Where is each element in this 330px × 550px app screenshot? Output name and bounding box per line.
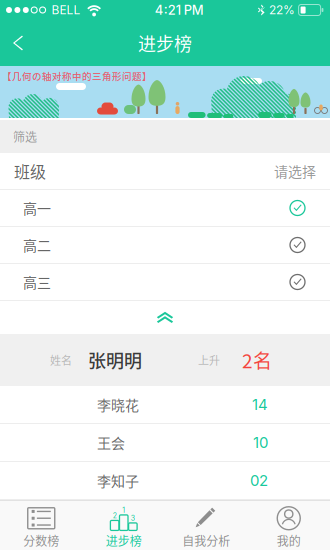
button[interactable]: Back <box>0 23 42 63</box>
button[interactable]: 高三 <box>0 264 330 301</box>
button[interactable]: 王会 <box>0 424 330 462</box>
staticText: BELL <box>52 3 81 17</box>
staticText: 筛选 <box>13 128 37 145</box>
staticText: 进步榜 <box>106 532 142 549</box>
staticText: 请选择 <box>274 161 316 181</box>
staticText: 14 <box>252 395 268 413</box>
staticText: 高一 <box>23 198 51 218</box>
staticText: 王会 <box>97 432 125 453</box>
button[interactable]: 自我分析 <box>165 501 247 550</box>
staticText: 高二 <box>23 235 51 255</box>
button[interactable]: 班级 <box>0 153 330 189</box>
button[interactable]: 分数榜 <box>0 501 82 550</box>
staticText: 22% <box>269 3 295 17</box>
staticText: 张明明 <box>88 347 142 373</box>
staticText: 【几何の轴对称中的三角形问题】 <box>2 69 152 83</box>
staticText: 高三 <box>23 272 51 292</box>
button[interactable]: 高二 <box>0 227 330 264</box>
staticText: 我的 <box>277 532 301 549</box>
staticText: 分数榜 <box>23 532 59 549</box>
button[interactable]: 李知子 <box>0 462 330 500</box>
staticText: 李晓花 <box>97 394 139 415</box>
staticText: 上升 <box>198 352 220 368</box>
staticText: 2 <box>113 512 117 520</box>
button[interactable]: 高一 <box>0 190 330 227</box>
staticText: 班级 <box>14 159 46 183</box>
staticText: 姓名 <box>50 352 72 368</box>
staticText: 4:21 PM <box>155 2 204 18</box>
staticText: 李知子 <box>97 470 139 491</box>
staticText: 1 <box>122 506 125 515</box>
staticText: 自我分析 <box>182 532 230 549</box>
button[interactable]: 我的 <box>247 501 330 550</box>
button[interactable]: Collapse filters <box>0 301 330 334</box>
button[interactable]: 2 <box>82 501 165 550</box>
staticText: 02 <box>250 471 268 489</box>
staticText: 2名 <box>242 346 272 374</box>
staticText: 10 <box>253 433 268 451</box>
staticText: 进步榜 <box>138 30 192 56</box>
button[interactable]: 李晓花 <box>0 386 330 424</box>
staticText: 3 <box>131 514 135 523</box>
